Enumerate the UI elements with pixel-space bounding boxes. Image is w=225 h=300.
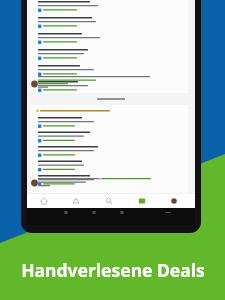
- button[interactable]: Home: [29, 194, 59, 208]
- button[interactable]: Profile: [159, 194, 189, 208]
- button[interactable]: Notifications: [61, 194, 91, 208]
- staticText: Handverlesene Deals: [21, 258, 205, 282]
- button[interactable]: Deals: [127, 194, 157, 208]
- button[interactable]: Search: [94, 194, 124, 208]
